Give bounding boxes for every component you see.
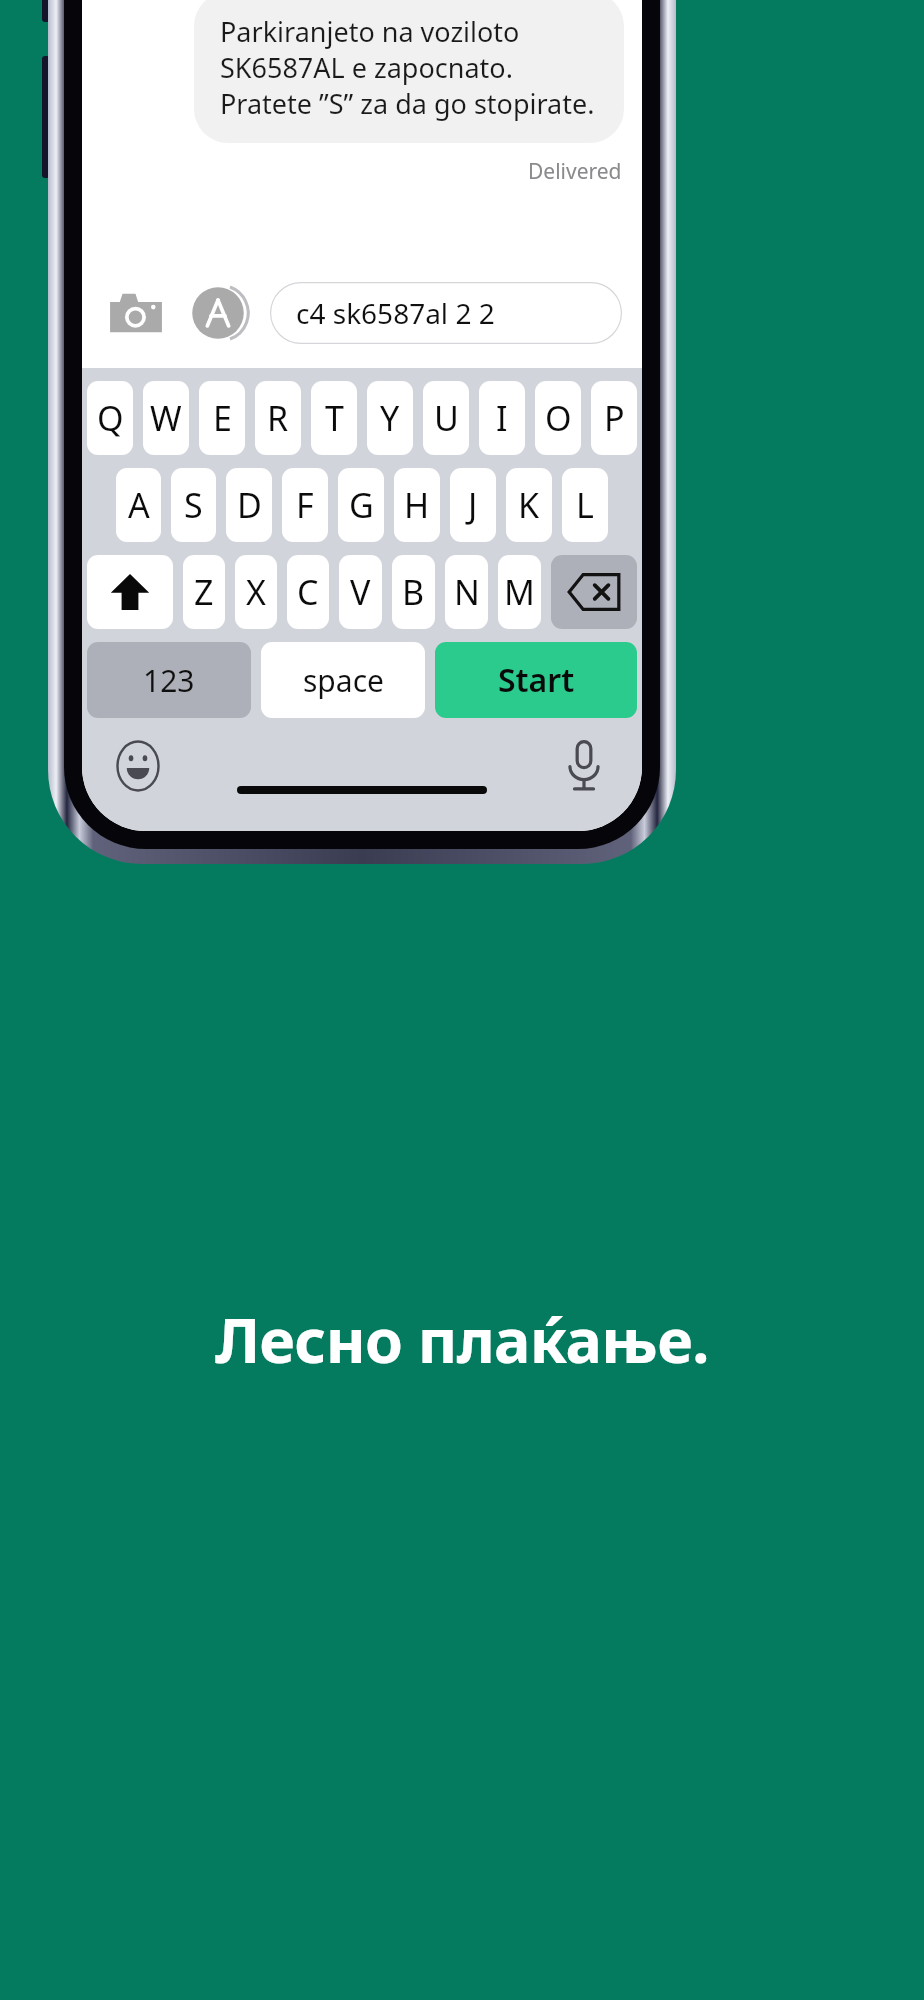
button[interactable]: W [143,381,189,455]
button[interactable]: R [255,381,301,455]
staticText: K [518,482,540,528]
button[interactable]: Q [87,381,133,455]
staticText: I [496,395,508,441]
button[interactable]: c4 sk6587al 2 2 [270,282,622,344]
staticText: X [246,569,266,615]
staticText: R [267,395,289,441]
button[interactable]: O [535,381,581,455]
button[interactable]: Y [367,381,413,455]
staticText: M [504,569,535,615]
staticText: Z [194,569,214,615]
button[interactable]: space [261,642,425,718]
button[interactable]: Start [435,642,637,718]
button[interactable]: M [498,555,541,629]
staticText: G [349,482,374,528]
button[interactable]: I [479,381,525,455]
staticText: J [468,482,478,528]
staticText: V [350,569,371,615]
staticText: Parkiranjeto na voziloto SK6587AL e zapo… [220,13,598,122]
button[interactable]: V [339,555,382,629]
button[interactable]: P [591,381,637,455]
staticText: space [303,660,384,701]
button[interactable]: X [235,555,277,629]
staticText: c4 sk6587al 2 2 [296,294,495,332]
button[interactable]: Backspace [551,555,637,629]
button[interactable]: L [562,468,608,542]
staticText: D [237,482,262,528]
staticText: B [402,569,425,615]
button[interactable]: C [287,555,329,629]
button[interactable]: S [171,468,216,542]
button[interactable]: T [311,381,357,455]
button[interactable]: K [506,468,552,542]
button[interactable]: B [392,555,435,629]
staticText: P [604,395,625,441]
button[interactable]: Emoji [106,734,170,798]
staticText: Y [380,395,400,441]
button[interactable]: D [226,468,272,542]
staticText: F [296,482,314,528]
button[interactable]: Z [183,555,225,629]
button[interactable]: A [116,468,161,542]
staticText: Лесно плаќање. [0,1298,924,1381]
button[interactable]: Dictation [552,734,616,798]
staticText: 123 [143,660,195,701]
button[interactable]: U [423,381,469,455]
staticText: L [576,482,594,528]
staticText: E [213,395,232,441]
staticText: Q [97,395,124,441]
staticText: Start [498,658,575,702]
staticText: O [545,395,572,441]
staticText: C [297,569,319,615]
staticText: T [325,395,344,441]
staticText: H [404,482,430,528]
button[interactable]: Shift [87,555,173,629]
staticText: S [184,482,203,528]
button[interactable]: J [450,468,496,542]
button[interactable]: E [199,381,245,455]
button[interactable]: Camera [106,283,166,343]
staticText: U [434,395,459,441]
button[interactable]: G [338,468,384,542]
staticText: N [454,569,480,615]
button[interactable]: 123 [87,642,251,718]
staticText: W [150,395,182,441]
button[interactable]: H [394,468,440,542]
button[interactable]: F [282,468,328,542]
staticText: A [128,482,150,528]
staticText: Delivered [528,157,622,186]
button[interactable]: App Store [188,283,248,343]
button[interactable]: N [445,555,488,629]
